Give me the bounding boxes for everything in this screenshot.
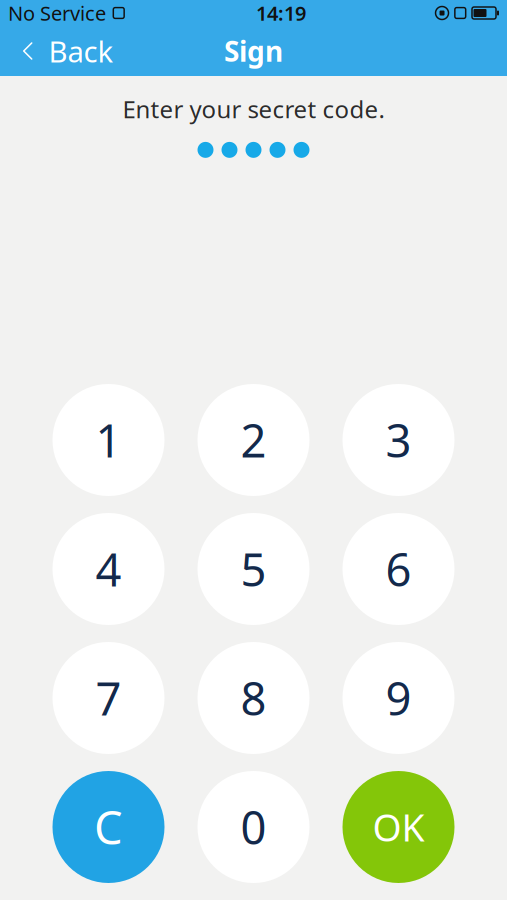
staticText: 14:19 <box>256 0 306 26</box>
staticText: 2 <box>240 410 266 470</box>
staticText: Sign <box>224 32 283 70</box>
button[interactable]: 7 <box>52 642 164 754</box>
staticText: Back <box>49 31 114 70</box>
staticText: 7 <box>95 668 121 728</box>
staticText: OK <box>372 802 424 852</box>
staticText: 1 <box>95 410 121 470</box>
button[interactable]: 3 <box>342 384 454 496</box>
button[interactable]: 8 <box>197 642 309 754</box>
staticText: C <box>94 797 123 857</box>
staticText: 6 <box>385 539 411 599</box>
button[interactable]: 0 <box>197 771 309 883</box>
button[interactable]: 2 <box>197 384 309 496</box>
button[interactable]: 9 <box>342 642 454 754</box>
staticText: No Service <box>8 0 106 26</box>
staticText: 9 <box>385 668 411 728</box>
staticText: 4 <box>95 539 121 599</box>
button[interactable]: C <box>52 771 164 883</box>
staticText: 5 <box>240 539 266 599</box>
staticText <box>448 2 452 24</box>
staticText: 3 <box>385 410 411 470</box>
button[interactable]: 6 <box>342 513 454 625</box>
button[interactable]: OK <box>342 771 454 883</box>
button[interactable]: Back <box>0 26 128 76</box>
staticText: Enter your secret code. <box>122 93 384 125</box>
staticText: 8 <box>240 668 266 728</box>
staticText: 0 <box>240 797 266 857</box>
button[interactable]: 1 <box>52 384 164 496</box>
button[interactable]: 4 <box>52 513 164 625</box>
button[interactable]: 5 <box>197 513 309 625</box>
staticText <box>468 2 472 24</box>
